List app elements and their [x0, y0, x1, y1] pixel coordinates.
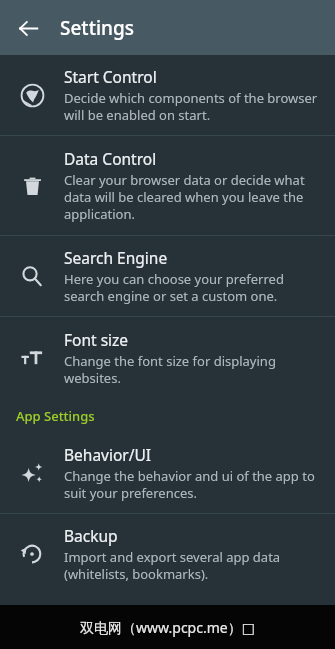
staticText: Settings: [60, 15, 134, 41]
button[interactable]: Behavior/UI: [0, 433, 335, 513]
button[interactable]: Backup: [0, 514, 335, 594]
button[interactable]: Start Control: [0, 55, 335, 135]
staticText: Backup: [64, 525, 118, 546]
button[interactable]: Font size: [0, 317, 335, 398]
staticText: Start Control: [64, 66, 157, 87]
button[interactable]: Data Control: [0, 136, 335, 235]
staticText: Decide which components of the browser w…: [64, 89, 319, 124]
staticText: Data Control: [64, 148, 157, 169]
staticText: App Settings: [16, 407, 95, 425]
staticText: Behavior/UI: [64, 444, 152, 465]
staticText: Here you can choose your preferred searc…: [64, 270, 319, 305]
staticText: Import and export several app data (whit…: [64, 548, 319, 583]
staticText: 双电网（www.pcpc.me）□: [80, 618, 255, 637]
button[interactable]: Search Engine: [0, 236, 335, 316]
staticText: Font size: [64, 329, 129, 350]
staticText: Change the behavior and ui of the app to…: [64, 467, 319, 502]
button[interactable]: Back: [8, 8, 48, 48]
staticText: Change the font size for displaying webs…: [64, 352, 319, 387]
staticText: Search Engine: [64, 247, 168, 268]
staticText: Clear your browser data or decide what d…: [64, 171, 319, 223]
